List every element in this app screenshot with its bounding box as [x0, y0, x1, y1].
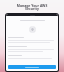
- staticText: Manage Your AWS Security: [2, 3, 62, 11]
- button[interactable]: [8, 65, 56, 69]
